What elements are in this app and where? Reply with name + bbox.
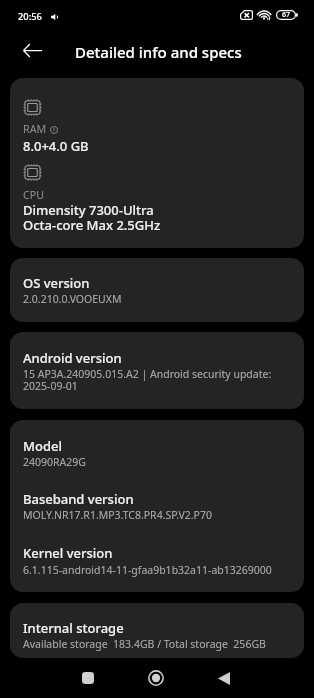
staticText: CPU xyxy=(23,189,45,202)
button[interactable]: Android version 15 xyxy=(10,332,304,409)
staticText: 8.0+4.0 GB xyxy=(23,138,89,154)
staticText: Model xyxy=(23,438,62,454)
staticText: 15 AP3A.240905.015.A2 | Android security… xyxy=(23,368,272,381)
staticText: 2.0.210.0.VOOEUXM xyxy=(23,293,122,306)
button[interactable]: Internal storage xyxy=(10,603,304,658)
staticText: Dimensity 7300-Ultra xyxy=(23,202,154,218)
staticText: Baseband version xyxy=(23,491,134,507)
button[interactable]: Home xyxy=(134,658,178,698)
staticText: Kernel version xyxy=(23,545,113,561)
staticText: Octa-core Max 2.5GHz xyxy=(23,217,161,233)
button[interactable]: Model 24090RA29G xyxy=(10,420,304,592)
button[interactable]: Recent apps xyxy=(66,658,110,698)
button[interactable]: RAM 8.0+4.0 GB, CPU Dimensity 7300-Ultra… xyxy=(10,78,304,248)
button[interactable]: Navigate up xyxy=(14,32,51,69)
staticText: Android version xyxy=(23,350,122,366)
staticText: Detailed info and specs xyxy=(75,42,242,62)
button[interactable]: Back xyxy=(202,658,246,698)
staticText: 6.1.115-android14-11-gfaa9b1b32a11-ab132… xyxy=(23,564,272,577)
staticText: Internal storage xyxy=(23,620,124,636)
staticText: 20:56 xyxy=(18,10,42,23)
staticText: Available storage 183.4GB / Total storag… xyxy=(23,638,266,651)
button[interactable]: OS version 2.0.210.0.VOOEUXM xyxy=(10,258,304,322)
staticText: 24090RA29G xyxy=(23,456,86,469)
staticText: RAM xyxy=(23,123,47,136)
staticText: 2025-09-01 xyxy=(23,380,78,393)
staticText: OS version xyxy=(23,275,90,291)
staticText: 67 xyxy=(282,10,291,20)
staticText: MOLY.NR17.R1.MP3.TC8.PR4.SP.V2.P70 xyxy=(23,509,212,522)
